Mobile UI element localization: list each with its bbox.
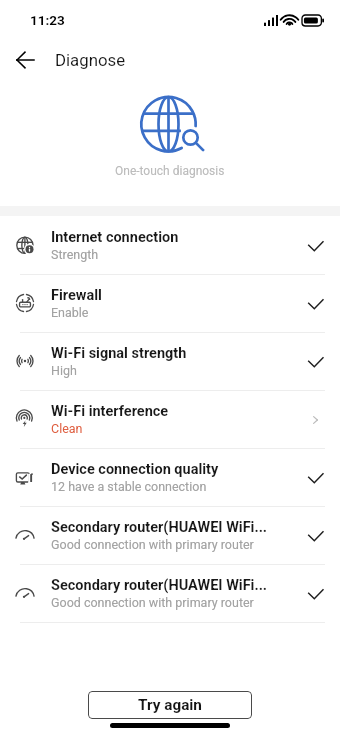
staticText: Device connection quality bbox=[51, 461, 219, 478]
button[interactable]: Device connection quality bbox=[0, 449, 340, 507]
staticText: Secondary router(HUAWEI WiFi... bbox=[51, 577, 268, 594]
staticText: Wi-Fi interference bbox=[51, 403, 169, 420]
staticText: Diagnose bbox=[55, 50, 126, 70]
staticText: One-touch diagnosis bbox=[115, 164, 225, 178]
staticText: Try again bbox=[138, 696, 202, 714]
staticText: High bbox=[51, 363, 77, 378]
staticText: Wi-Fi signal strength bbox=[51, 345, 187, 362]
button[interactable]: Back bbox=[9, 44, 41, 76]
staticText: Clean bbox=[51, 421, 83, 436]
button[interactable]: Secondary router(HUAWEI WiFi... bbox=[0, 507, 340, 565]
staticText: Internet connection bbox=[51, 229, 179, 246]
button[interactable]: Firewall bbox=[0, 275, 340, 333]
staticText: Firewall bbox=[51, 287, 102, 304]
staticText: Good connection with primary router bbox=[51, 537, 254, 552]
button[interactable]: Try again bbox=[88, 691, 252, 719]
staticText: 12 have a stable connection bbox=[51, 479, 207, 494]
staticText: Good connection with primary router bbox=[51, 595, 254, 610]
staticText: 11:23 bbox=[30, 12, 65, 28]
staticText: Secondary router(HUAWEI WiFi... bbox=[51, 519, 268, 536]
button[interactable]: Secondary router(HUAWEI WiFi... bbox=[0, 565, 340, 623]
staticText: Strength bbox=[51, 247, 99, 262]
button[interactable]: Wi-Fi signal strength bbox=[0, 333, 340, 391]
staticText: Enable bbox=[51, 305, 89, 320]
button[interactable]: Internet connection bbox=[0, 217, 340, 275]
button[interactable]: Wi-Fi interference bbox=[0, 391, 340, 449]
